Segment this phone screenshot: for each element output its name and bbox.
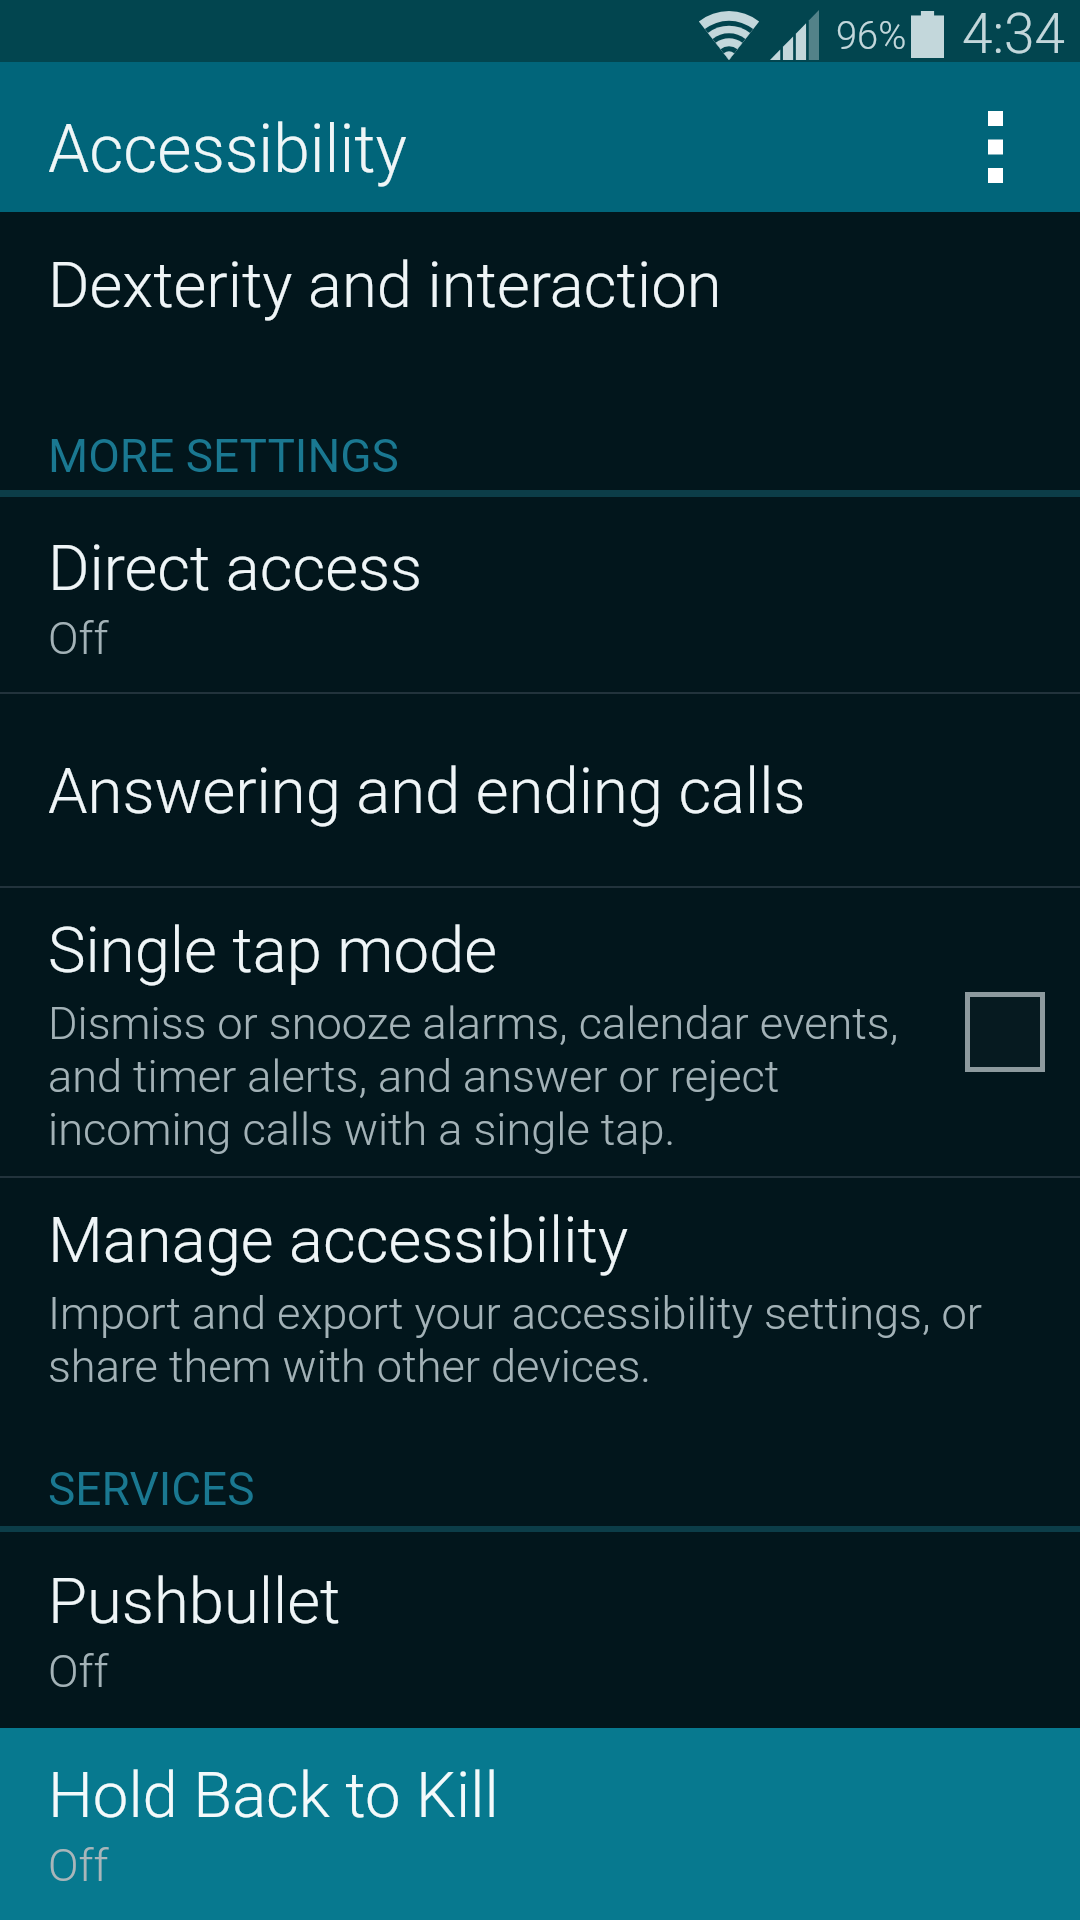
staticText: Off — [48, 1839, 109, 1892]
button[interactable]: Direct access — [0, 497, 1080, 692]
button[interactable]: Manage accessibility — [0, 1178, 1080, 1526]
button[interactable]: More options — [940, 62, 1050, 212]
staticText: Hold Back to Kill — [48, 1758, 499, 1832]
button[interactable]: Hold Back to Kill — [0, 1728, 1080, 1920]
staticText: Manage accessibility — [48, 1203, 629, 1277]
staticText: Direct access — [48, 531, 423, 605]
staticText: Single tap mode — [48, 913, 497, 987]
staticText: Import and export your accessibility set… — [48, 1287, 983, 1393]
staticText: Dexterity and interaction — [48, 248, 722, 322]
button[interactable]: Dexterity and interaction — [0, 212, 1080, 490]
staticText: Answering and ending calls — [48, 754, 806, 828]
staticText: MORE SETTINGS — [48, 429, 399, 483]
staticText: Accessibility — [48, 111, 407, 188]
button[interactable]: Answering and ending calls — [0, 694, 1080, 886]
staticText: Off — [48, 612, 109, 665]
staticText: 96% — [836, 14, 907, 59]
staticText: 4:34 — [962, 2, 1066, 66]
staticText: Pushbullet — [48, 1564, 341, 1638]
button[interactable]: Pushbullet — [0, 1532, 1080, 1728]
staticText: Dismiss or snooze alarms, calendar event… — [48, 997, 899, 1156]
staticText: Off — [48, 1645, 109, 1698]
button[interactable]: Single tap mode — [0, 888, 1080, 1176]
staticText: SERVICES — [48, 1462, 255, 1516]
